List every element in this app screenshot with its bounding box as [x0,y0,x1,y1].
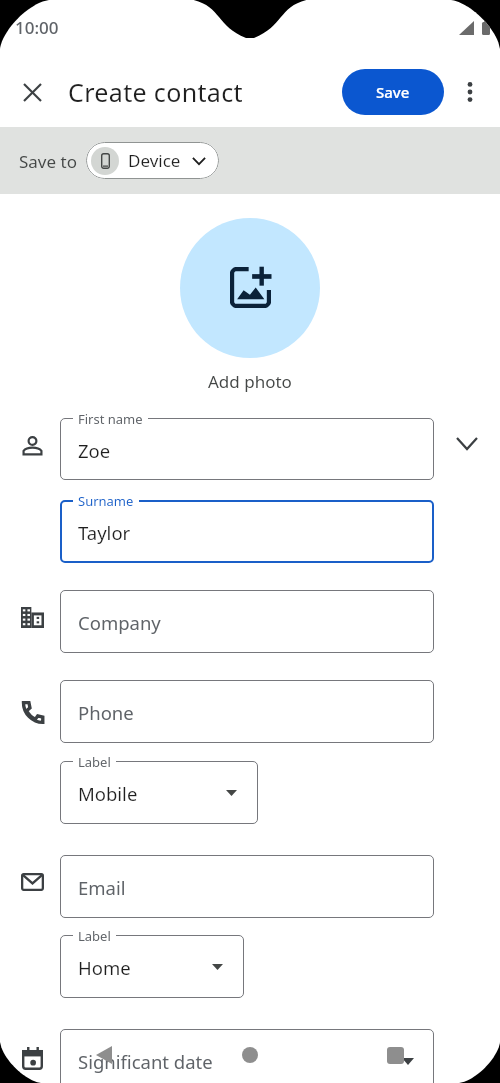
button[interactable]: Email [60,855,434,918]
button[interactable]: Expand name fields [444,419,490,467]
button[interactable]: Home [60,935,244,998]
staticText: Add photo [208,370,292,393]
button[interactable]: Recent apps [371,1039,419,1071]
button[interactable]: Phone [60,680,434,743]
staticText: Zoe [78,438,111,463]
button[interactable]: More options [448,70,492,114]
button[interactable]: Significant date [60,1029,434,1083]
staticText: Save to [19,150,77,173]
button[interactable]: Back [80,1039,128,1071]
button[interactable]: Taylor [60,500,434,563]
staticText: Mobile [78,781,138,806]
staticText: Create contact [68,75,243,109]
button[interactable]: Home [226,1039,274,1071]
staticText: Phone [78,700,134,725]
staticText: Home [78,955,131,980]
staticText: Device [128,149,181,172]
button[interactable]: Add photo [180,218,320,358]
staticText: Label [78,927,111,945]
staticText: 10:00 [15,16,59,39]
staticText: Save [376,82,410,102]
button[interactable]: Device [86,142,219,179]
staticText: Taylor [78,520,131,545]
button[interactable]: Save [342,69,444,115]
button[interactable]: Close [10,70,54,114]
staticText: Label [78,753,111,771]
button[interactable]: Mobile [60,761,258,824]
staticText: Company [78,610,161,635]
button[interactable]: Zoe [60,418,434,480]
staticText: Surname [78,492,134,510]
staticText: Email [78,875,126,900]
staticText: Significant date [78,1049,213,1074]
staticText: First name [78,410,143,428]
button[interactable]: Company [60,590,434,653]
